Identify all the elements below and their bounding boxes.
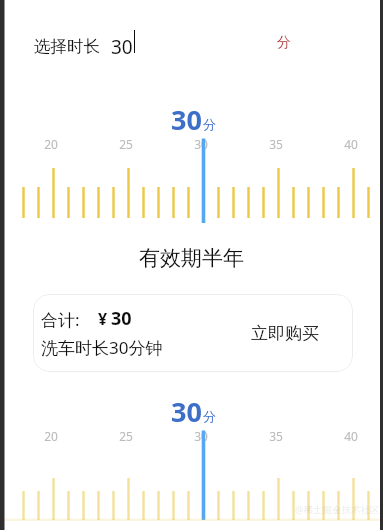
staticText: 40 — [344, 136, 358, 152]
staticText: 25 — [119, 136, 133, 152]
button[interactable]: 选择时长 — [0, 23, 383, 63]
staticText: 洗车时长30分钟 — [41, 336, 163, 359]
staticText: 分 — [203, 116, 216, 132]
staticText: ¥ — [98, 308, 108, 330]
staticText: 20 — [44, 428, 58, 444]
staticText: @稀土掘金技术社区 — [295, 503, 380, 516]
staticText: 25 — [119, 428, 133, 444]
button[interactable]: 分钟单位 — [271, 30, 297, 56]
staticText: 30 — [111, 306, 132, 331]
staticText: 30 — [194, 136, 208, 152]
staticText: 30 — [111, 34, 133, 60]
staticText: 35 — [269, 136, 283, 152]
staticText: 30 — [171, 393, 202, 430]
staticText: 合计: — [41, 308, 80, 331]
staticText: 立即购买 — [251, 323, 319, 344]
button[interactable]: 时长刻度选择器 2 — [0, 430, 383, 530]
staticText: 35 — [269, 428, 283, 444]
staticText: 20 — [44, 136, 58, 152]
staticText: 选择时长 — [34, 36, 100, 57]
staticText: 30 — [171, 101, 202, 138]
button[interactable]: 时长刻度选择器 — [0, 138, 383, 230]
staticText: 有效期半年 — [139, 245, 244, 271]
staticText: 40 — [344, 428, 358, 444]
staticText: 分 — [277, 34, 291, 52]
staticText: 分 — [203, 408, 216, 424]
button[interactable]: 立即购买 — [220, 294, 350, 372]
staticText: 30 — [194, 428, 208, 444]
